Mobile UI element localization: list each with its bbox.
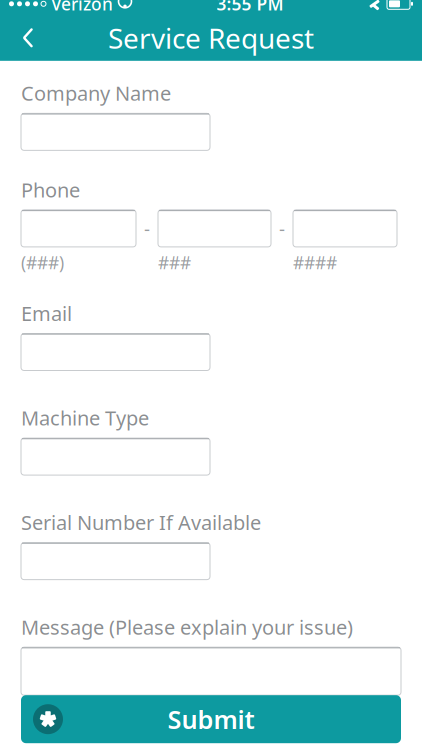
staticText: Company Name — [21, 80, 171, 106]
staticText: Verizon — [51, 0, 113, 15]
staticText: ### — [158, 251, 191, 274]
staticText: Email — [21, 300, 72, 326]
button[interactable]: Submit — [21, 695, 401, 743]
button[interactable] — [21, 210, 136, 247]
button[interactable] — [21, 113, 210, 150]
button[interactable] — [158, 210, 271, 247]
staticText: - — [279, 216, 285, 241]
staticText: #### — [293, 251, 337, 274]
button[interactable]: Back — [6, 16, 50, 60]
staticText: Machine Type — [21, 404, 149, 431]
button[interactable] — [21, 438, 210, 475]
staticText: Message (Please explain your issue) — [21, 614, 353, 640]
button[interactable] — [21, 647, 401, 695]
staticText: Service Request — [108, 19, 314, 56]
staticText: Submit — [167, 702, 254, 736]
staticText: Serial Number If Available — [21, 509, 261, 536]
staticText: (###) — [21, 251, 64, 274]
staticText: Phone — [21, 176, 80, 203]
staticText: - — [144, 216, 150, 241]
button[interactable] — [21, 543, 210, 580]
button[interactable] — [293, 210, 397, 247]
button[interactable] — [21, 333, 210, 370]
staticText: 3:55 PM — [216, 0, 283, 15]
